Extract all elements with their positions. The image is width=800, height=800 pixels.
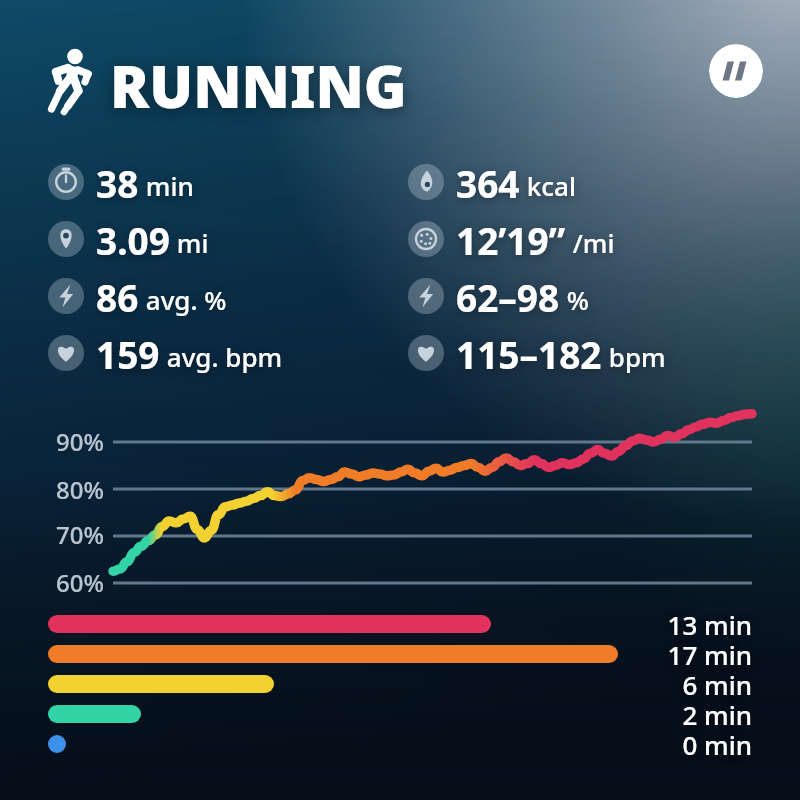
button[interactable]: App logo — [709, 44, 763, 98]
button[interactable]: 3.09 — [48, 215, 209, 263]
staticText: 12’19” — [456, 215, 566, 263]
staticText: /mi — [566, 225, 615, 260]
staticText: % — [560, 282, 589, 317]
button[interactable]: Zone 2: 2 min — [48, 705, 141, 723]
button[interactable]: Zone 4: 17 min — [48, 645, 618, 663]
staticText: 364 — [456, 158, 520, 206]
staticText: RUNNING — [110, 46, 407, 125]
button[interactable]: 159 — [48, 329, 283, 377]
staticText: 2 min — [592, 697, 752, 732]
staticText: 13 min — [592, 607, 752, 642]
staticText: avg. bpm — [160, 339, 283, 374]
button[interactable]: 38 — [48, 158, 194, 206]
staticText: min — [139, 168, 194, 203]
button[interactable]: Zone 3: 6 min — [48, 675, 274, 693]
staticText: 62–98 — [456, 272, 560, 320]
button[interactable]: Zone 5: 13 min — [48, 615, 491, 633]
button[interactable]: 364 — [408, 158, 576, 206]
staticText: 6 min — [592, 667, 752, 702]
staticText: 90% — [38, 425, 104, 458]
staticText: 159 — [96, 329, 160, 377]
button[interactable]: 115–182 — [408, 329, 666, 377]
staticText: kcal — [520, 168, 576, 203]
staticText: avg. % — [139, 282, 227, 317]
button[interactable]: 12’19” — [408, 215, 615, 263]
staticText: 86 — [96, 272, 139, 320]
button[interactable]: 62–98 — [408, 272, 589, 320]
button[interactable]: 86 — [48, 272, 227, 320]
staticText: 0 min — [592, 727, 752, 762]
staticText: 70% — [38, 518, 104, 551]
button[interactable]: Zone 1: 0 min — [48, 735, 66, 753]
staticText: 60% — [38, 566, 104, 599]
staticText: mi — [170, 225, 209, 260]
staticText: 3.09 — [96, 215, 170, 263]
staticText: 38 — [96, 158, 139, 206]
staticText: 80% — [38, 473, 104, 506]
staticText: bpm — [602, 339, 666, 374]
staticText: 17 min — [592, 637, 752, 672]
staticText: 115–182 — [456, 329, 602, 377]
